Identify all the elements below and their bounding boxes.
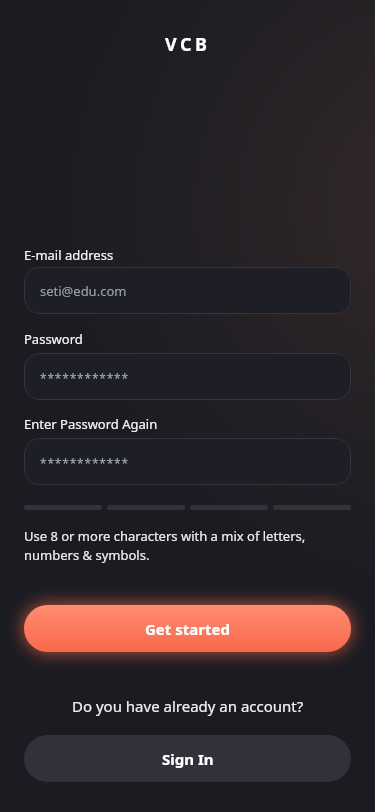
button[interactable]: Sign In: [24, 735, 351, 782]
staticText: Sign In: [162, 749, 214, 769]
staticText: VCB: [165, 32, 211, 57]
staticText: ************: [40, 455, 129, 471]
button[interactable]: ************: [24, 438, 351, 485]
button[interactable]: seti@edu.com: [24, 267, 351, 314]
staticText: Get started: [145, 619, 230, 639]
button[interactable]: Get started: [24, 605, 351, 652]
staticText: Do you have already an account?: [72, 696, 304, 716]
staticText: seti@edu.com: [40, 282, 127, 300]
button[interactable]: ************: [24, 353, 351, 400]
staticText: Use 8 or more characters with a mix of l…: [24, 527, 306, 564]
staticText: Enter Password Again: [24, 415, 158, 433]
staticText: Password: [24, 330, 83, 348]
staticText: E-mail address: [24, 246, 114, 264]
staticText: ************: [40, 370, 129, 386]
